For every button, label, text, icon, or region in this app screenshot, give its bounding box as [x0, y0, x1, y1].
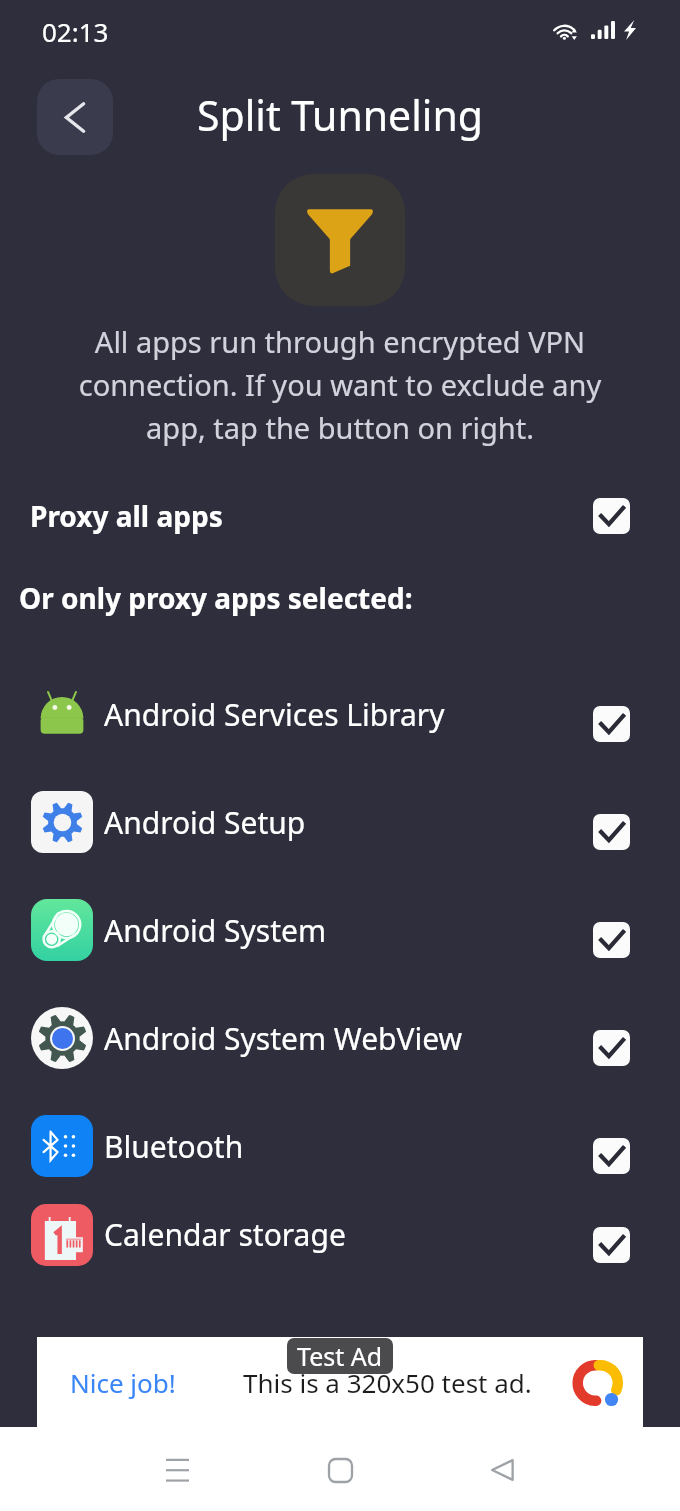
button[interactable]: Back — [37, 79, 113, 155]
button[interactable]: Home — [304, 1434, 376, 1506]
button[interactable]: Bluetooth — [0, 1092, 680, 1200]
staticText: Android System — [104, 910, 327, 951]
button[interactable]: Android System — [0, 876, 680, 984]
staticText: Bluetooth — [104, 1126, 244, 1167]
button[interactable]: Calendar storage — [0, 1200, 680, 1269]
staticText: Calendar storage — [104, 1214, 346, 1255]
staticText: Or only proxy apps selected: — [19, 579, 413, 617]
staticText: Proxy all apps — [30, 497, 223, 535]
staticText: This is a 320x50 test ad. — [243, 1365, 532, 1400]
button[interactable]: Android Setup — [0, 768, 680, 876]
button[interactable]: Nice job! — [70, 1365, 176, 1400]
staticText: Android Setup — [104, 802, 306, 843]
button[interactable]: Recents — [141, 1434, 213, 1506]
button[interactable]: Back — [466, 1434, 538, 1506]
button[interactable]: Android Services Library — [0, 660, 680, 768]
staticText: Split Tunneling — [197, 87, 483, 143]
staticText: Test Ad — [297, 1339, 383, 1373]
staticText: All apps run through encrypted VPN conne… — [58, 322, 622, 447]
button[interactable]: Android System WebView — [0, 984, 680, 1092]
staticText: 02:13 — [42, 14, 109, 49]
staticText: Android Services Library — [104, 694, 445, 735]
staticText: Android System WebView — [104, 1018, 463, 1059]
button[interactable]: Proxy all apps — [0, 488, 680, 544]
